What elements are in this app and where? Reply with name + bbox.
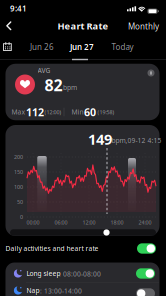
staticText: 60 (84, 105, 96, 119)
staticText: (12:00) (44, 109, 61, 116)
button[interactable]: Calendar (1, 39, 17, 55)
staticText: bpm (63, 83, 77, 92)
staticText: 00:00 (26, 219, 39, 226)
staticText: (19:58) (97, 109, 114, 116)
staticText: 200 (14, 153, 23, 161)
button[interactable]: Info (146, 68, 156, 78)
staticText: 9:41 (10, 3, 27, 14)
staticText: 100 (14, 183, 23, 191)
staticText: Nap (26, 286, 39, 295)
staticText: 06:00 (54, 219, 67, 226)
staticText: Jun 27 (70, 42, 94, 52)
staticText: 0 (20, 213, 23, 221)
button[interactable]: Daily activities and heart rate (137, 243, 156, 254)
button[interactable]: Long sleep (136, 268, 155, 279)
staticText: 50 (17, 198, 23, 206)
staticText: : 13:00-14:00 (40, 286, 82, 295)
button[interactable]: Jun 27 (65, 38, 99, 56)
button[interactable]: Back (0, 19, 16, 33)
staticText: Monthly (128, 21, 159, 32)
staticText: 18:00 (110, 219, 123, 226)
staticText: 82 (44, 74, 62, 96)
staticText: AVG (37, 66, 50, 75)
staticText: Today (111, 42, 133, 52)
staticText: : 08:00-08:00 (59, 269, 101, 278)
button[interactable]: Nap (136, 288, 155, 296)
button[interactable]: Today (106, 38, 138, 56)
staticText: 149 (88, 129, 112, 149)
staticText: 150 (14, 168, 23, 176)
staticText: Jun 26 (30, 42, 54, 52)
staticText: Long sleep (26, 269, 60, 278)
staticText: 12:00 (82, 219, 95, 226)
staticText: Daily activities and heart rate (5, 244, 98, 253)
staticText: Min (71, 108, 83, 116)
staticText: 112 (26, 105, 44, 119)
staticText: Heart Rate (57, 20, 108, 32)
staticText: Max (11, 108, 25, 116)
staticText: 24:00 (138, 219, 151, 226)
button[interactable]: Monthly (124, 18, 163, 35)
button[interactable]: Jun 26 (25, 38, 59, 56)
staticText: bpm,09-12 4:15 (111, 136, 161, 145)
